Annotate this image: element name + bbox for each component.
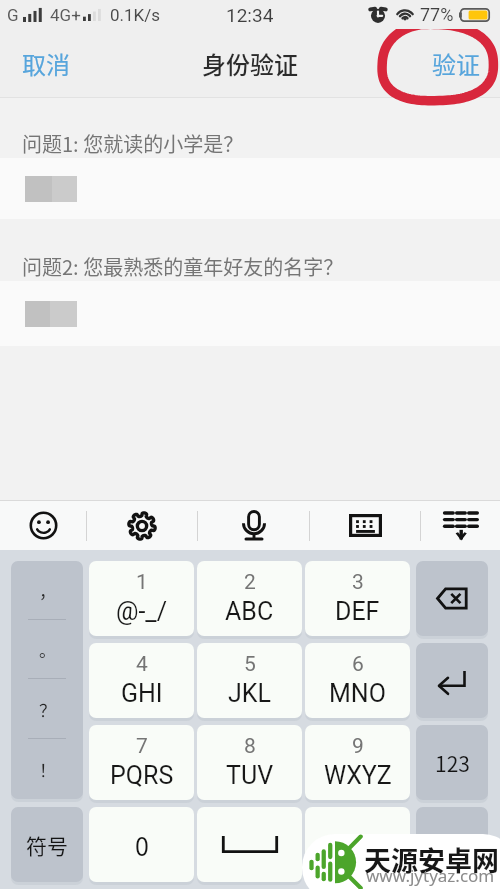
button[interactable] bbox=[0, 281, 500, 346]
staticText: 符号 bbox=[26, 830, 68, 860]
button[interactable]: 2 ABC bbox=[197, 561, 302, 636]
staticText: 4G+ bbox=[50, 5, 81, 25]
staticText: PQRS bbox=[110, 761, 174, 790]
staticText: MNO bbox=[329, 679, 386, 708]
button[interactable]: 符号 bbox=[11, 807, 83, 882]
staticText: 2 bbox=[244, 570, 256, 595]
staticText: 77% bbox=[420, 4, 454, 25]
staticText: 12:34 bbox=[226, 4, 274, 26]
button[interactable] bbox=[0, 158, 500, 219]
staticText: 8 bbox=[244, 734, 256, 759]
staticText: ！ bbox=[39, 757, 56, 782]
staticText: 问题2: 您最熟悉的童年好友的名字？ bbox=[22, 252, 344, 281]
staticText: 问题1: 您就读的小学是？ bbox=[22, 129, 244, 158]
staticText: 取消 bbox=[22, 46, 70, 81]
button[interactable]: Punctuation bbox=[11, 561, 83, 799]
button[interactable]: 6 MNO bbox=[305, 643, 410, 718]
button[interactable]: ， bbox=[305, 807, 410, 882]
staticText: GHI bbox=[121, 679, 163, 708]
staticText: 5 bbox=[244, 652, 256, 677]
staticText: 验证 bbox=[432, 46, 480, 81]
staticText: 4 bbox=[136, 652, 148, 677]
staticText: 。 bbox=[39, 637, 56, 662]
staticText: 身份验证 bbox=[202, 46, 298, 81]
staticText: ABC bbox=[225, 597, 274, 626]
button[interactable]: 验证 bbox=[412, 29, 500, 97]
button[interactable]: 7 PQRS bbox=[89, 725, 194, 800]
button[interactable]: 3 DEF bbox=[305, 561, 410, 636]
button[interactable]: 取消 bbox=[0, 29, 92, 97]
button[interactable]: Space bbox=[197, 807, 302, 882]
staticText: @-_/ bbox=[116, 597, 167, 626]
button[interactable]: 8 TUV bbox=[197, 725, 302, 800]
staticText: 中 bbox=[442, 830, 463, 860]
button[interactable]: Voice input bbox=[198, 501, 309, 550]
staticText: TUV bbox=[226, 761, 274, 790]
staticText: 9 bbox=[352, 734, 364, 759]
button[interactable]: Enter bbox=[416, 643, 488, 718]
button[interactable]: Switch keyboard bbox=[310, 501, 420, 550]
button[interactable]: 4 GHI bbox=[89, 643, 194, 718]
staticText: ， bbox=[348, 830, 368, 859]
staticText: JKL bbox=[228, 679, 271, 708]
staticText: 1 bbox=[136, 570, 148, 595]
button[interactable]: Hide keyboard bbox=[421, 501, 500, 550]
staticText: ， bbox=[39, 578, 56, 603]
button[interactable]: 0 bbox=[89, 807, 194, 882]
staticText: www.jytyaz.com bbox=[366, 864, 495, 887]
staticText: G bbox=[7, 5, 19, 25]
staticText: 0.1K/s bbox=[110, 5, 161, 25]
button[interactable]: Backspace bbox=[416, 561, 488, 636]
staticText: WXYZ bbox=[324, 761, 392, 790]
staticText: 6 bbox=[352, 652, 364, 677]
staticText: 123 bbox=[435, 748, 470, 778]
button[interactable]: 1 @-_/ bbox=[89, 561, 194, 636]
staticText: 天源安卓网 bbox=[364, 840, 499, 879]
button[interactable]: 9 WXYZ bbox=[305, 725, 410, 800]
staticText: ？ bbox=[39, 697, 56, 722]
staticText: 3 bbox=[352, 570, 364, 595]
button[interactable]: Keyboard settings bbox=[87, 501, 197, 550]
button[interactable]: 5 JKL bbox=[197, 643, 302, 718]
button[interactable]: Number mode bbox=[416, 725, 488, 800]
staticText: 0 bbox=[135, 827, 149, 863]
button[interactable]: 中英文切换 bbox=[416, 807, 488, 882]
staticText: 7 bbox=[136, 734, 148, 759]
staticText: DEF bbox=[335, 597, 380, 626]
button[interactable]: Emoji bbox=[0, 501, 86, 550]
